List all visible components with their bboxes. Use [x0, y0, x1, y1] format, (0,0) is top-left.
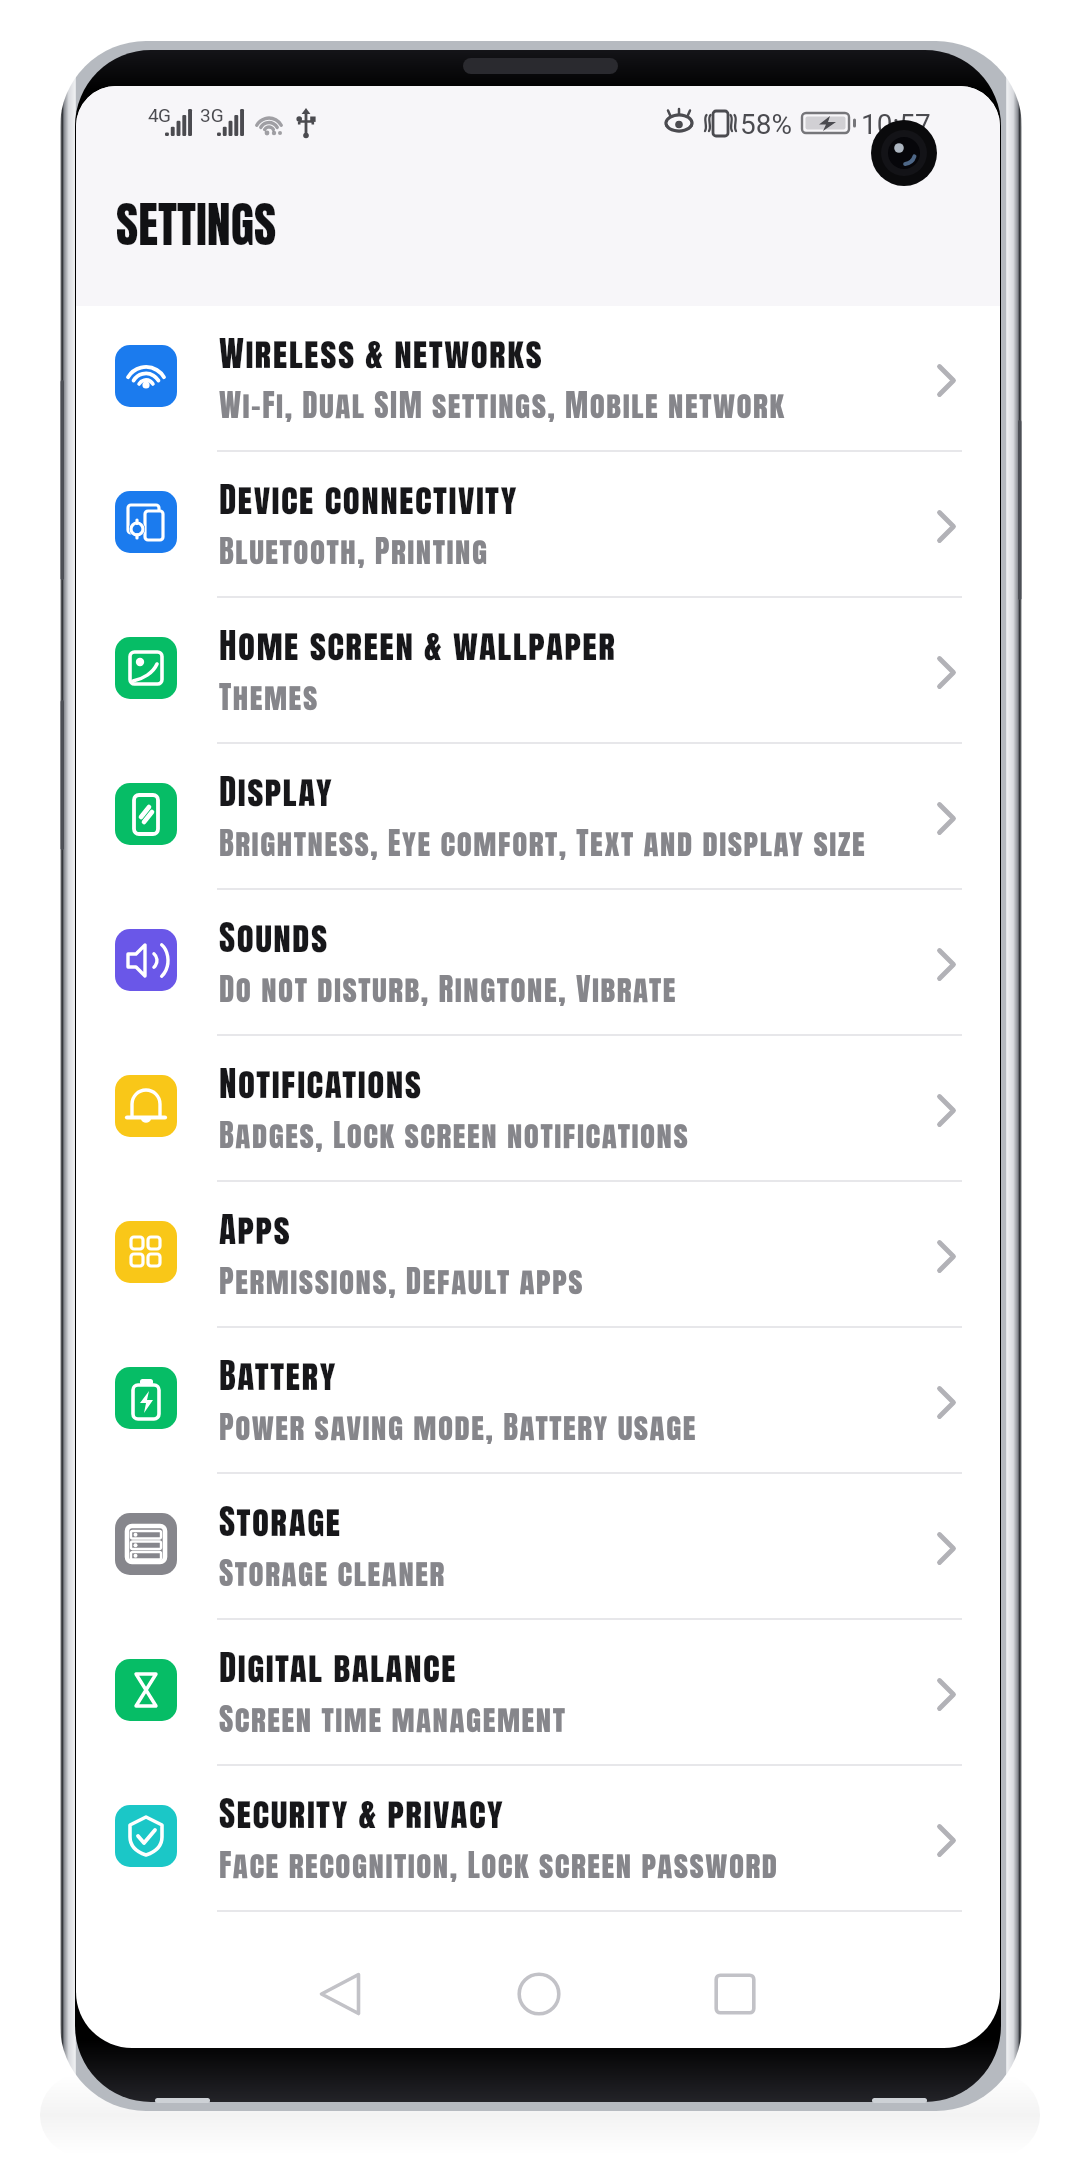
- staticText: Storage: [219, 1495, 342, 1548]
- staticText: SETTINGS: [116, 189, 277, 261]
- staticText: Digital balance: [219, 1641, 458, 1694]
- staticText: Screen time management: [219, 1696, 567, 1743]
- staticText: 3G: [200, 104, 224, 126]
- button[interactable]: Notifications: [76, 1036, 1000, 1182]
- staticText: Brightness, Eye comfort, Text and displa…: [219, 820, 867, 867]
- staticText: Do not disturb, Ringtone, Vibrate: [219, 966, 678, 1013]
- staticText: Power saving mode, Battery usage: [219, 1404, 698, 1451]
- staticText: Badges, Lock screen notifications: [219, 1112, 690, 1159]
- button[interactable]: Display: [76, 744, 1000, 890]
- button[interactable]: Wireless & networks: [76, 306, 1000, 452]
- staticText: Face recognition, Lock screen password: [219, 1842, 779, 1889]
- button[interactable]: Apps: [76, 1182, 1000, 1328]
- button[interactable]: Storage: [76, 1474, 1000, 1620]
- staticText: Themes: [219, 674, 319, 721]
- staticText: Wireless & networks: [219, 327, 544, 380]
- button[interactable]: Home: [491, 1946, 587, 2042]
- button[interactable]: Sounds: [76, 890, 1000, 1036]
- staticText: Battery: [219, 1349, 337, 1402]
- staticText: Apps: [219, 1203, 292, 1256]
- staticText: Sounds: [219, 911, 329, 964]
- button[interactable]: Digital balance: [76, 1620, 1000, 1766]
- button[interactable]: Battery: [76, 1328, 1000, 1474]
- staticText: 4: [148, 104, 159, 126]
- button[interactable]: Back: [292, 1946, 388, 2042]
- button[interactable]: Security & privacy: [76, 1766, 1000, 1912]
- staticText: 10:57: [861, 108, 931, 141]
- staticText: G: [158, 104, 171, 126]
- staticText: Security & privacy: [219, 1787, 505, 1840]
- staticText: Display: [219, 765, 334, 818]
- staticText: Notifications: [219, 1057, 423, 1110]
- staticText: Wi-Fi, Dual SIM settings, Mobile network: [219, 382, 786, 429]
- staticText: Device connectivity: [219, 473, 518, 526]
- staticText: Permissions, Default apps: [219, 1258, 585, 1305]
- staticText: Bluetooth, Printing: [219, 528, 489, 575]
- button[interactable]: Home screen & wallpaper: [76, 598, 1000, 744]
- staticText: Storage cleaner: [219, 1550, 446, 1597]
- staticText: 58%: [740, 108, 792, 141]
- button[interactable]: Recents: [687, 1946, 783, 2042]
- button[interactable]: Device connectivity: [76, 452, 1000, 598]
- staticText: Home screen & wallpaper: [219, 619, 617, 672]
